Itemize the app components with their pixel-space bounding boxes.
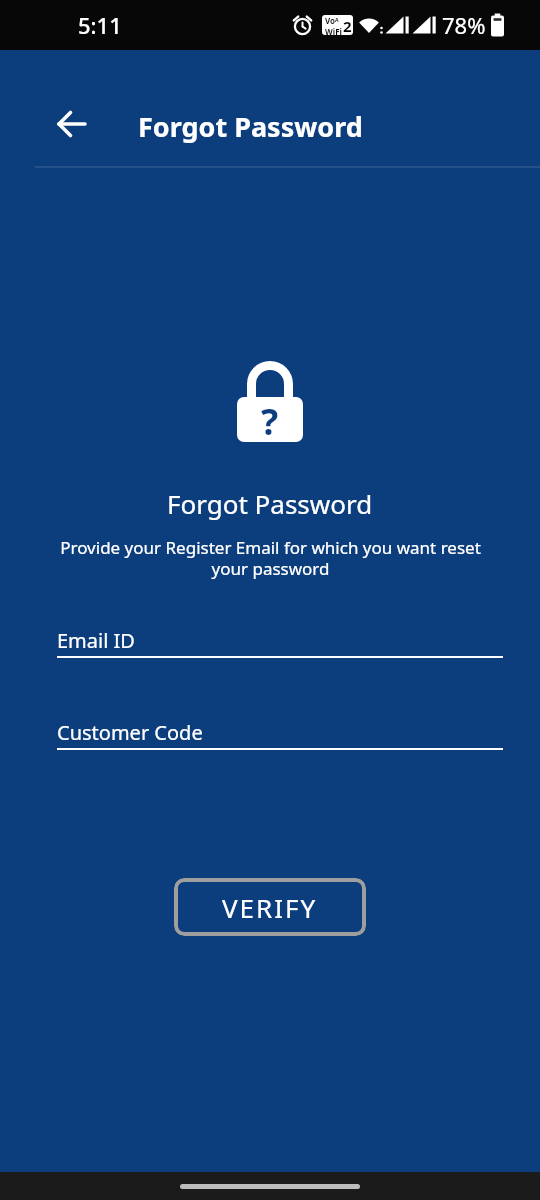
- staticText: WiFi: [325, 26, 342, 35]
- button[interactable]: [55, 108, 88, 140]
- staticText: Voᴬ: [325, 15, 339, 26]
- staticText: Forgot Password: [167, 486, 373, 521]
- staticText: ?: [261, 397, 279, 442]
- button[interactable]: VERIFY: [174, 878, 366, 936]
- staticText: Customer Code: [57, 719, 203, 746]
- staticText: 2: [343, 16, 352, 35]
- staticText: 78%: [442, 10, 486, 40]
- staticText: Email ID: [57, 627, 135, 654]
- staticText: VERIFY: [222, 890, 318, 925]
- staticText: Forgot Password: [138, 108, 363, 145]
- button[interactable]: Customer Code: [57, 707, 503, 750]
- staticText: Provide your Register Email for which yo…: [60, 536, 481, 580]
- staticText: 5:11: [78, 10, 122, 40]
- button[interactable]: Email ID: [57, 615, 503, 658]
